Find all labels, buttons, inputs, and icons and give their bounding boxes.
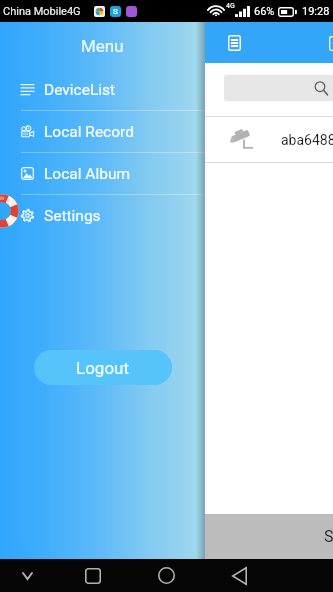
button[interactable]: Add device [320,28,333,58]
staticText: Settings [44,207,101,225]
button[interactable]: Se [0,514,333,559]
button[interactable]: aba6488 [0,117,333,162]
staticText: aba6488 [281,132,333,148]
staticText: 19:28 [302,5,330,18]
staticText: 66% [254,5,275,18]
staticText: Se [324,527,333,546]
button[interactable]: DeviceList [0,69,205,110]
button[interactable]: Home [145,559,188,592]
staticText: DeviceList [44,81,116,99]
staticText: 4G [226,2,235,10]
button[interactable]: Logout [34,350,172,385]
staticText: Menu [81,36,124,56]
button[interactable]: Local Album [0,153,205,194]
button[interactable] [224,75,333,101]
button[interactable]: Settings [0,195,205,236]
staticText: Local Album [44,165,131,183]
button[interactable]: Hide keyboard [6,559,49,592]
button[interactable]: Device list [219,28,249,58]
button[interactable]: Recent apps [71,559,114,592]
staticText: Logout [76,358,130,378]
staticText: S [113,7,118,16]
button[interactable]: Local Record [0,111,205,152]
button[interactable]: Back [218,559,261,592]
staticText: Local Record [44,123,134,141]
staticText: China Mobile4G [3,5,81,18]
